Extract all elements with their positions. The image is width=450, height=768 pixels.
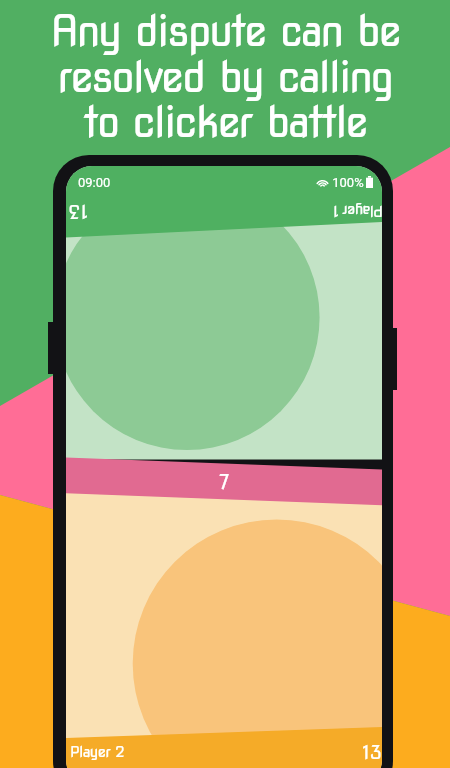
button[interactable]: Player 2 tap area	[66, 502, 382, 732]
button[interactable]: Player 2	[66, 737, 382, 767]
staticText: 09:00	[78, 175, 111, 190]
staticText: Player 1	[333, 202, 382, 220]
staticText: 100%	[329, 175, 364, 190]
button[interactable]: Player 1 tap area	[66, 238, 382, 458]
staticText: Player 2	[70, 743, 125, 761]
staticText: 13	[68, 200, 87, 223]
staticText: 13	[363, 741, 382, 764]
button[interactable]: 13	[66, 196, 382, 226]
staticText: 7	[219, 470, 230, 494]
staticText: Any dispute can be resolved by calling t…	[0, 6, 450, 147]
